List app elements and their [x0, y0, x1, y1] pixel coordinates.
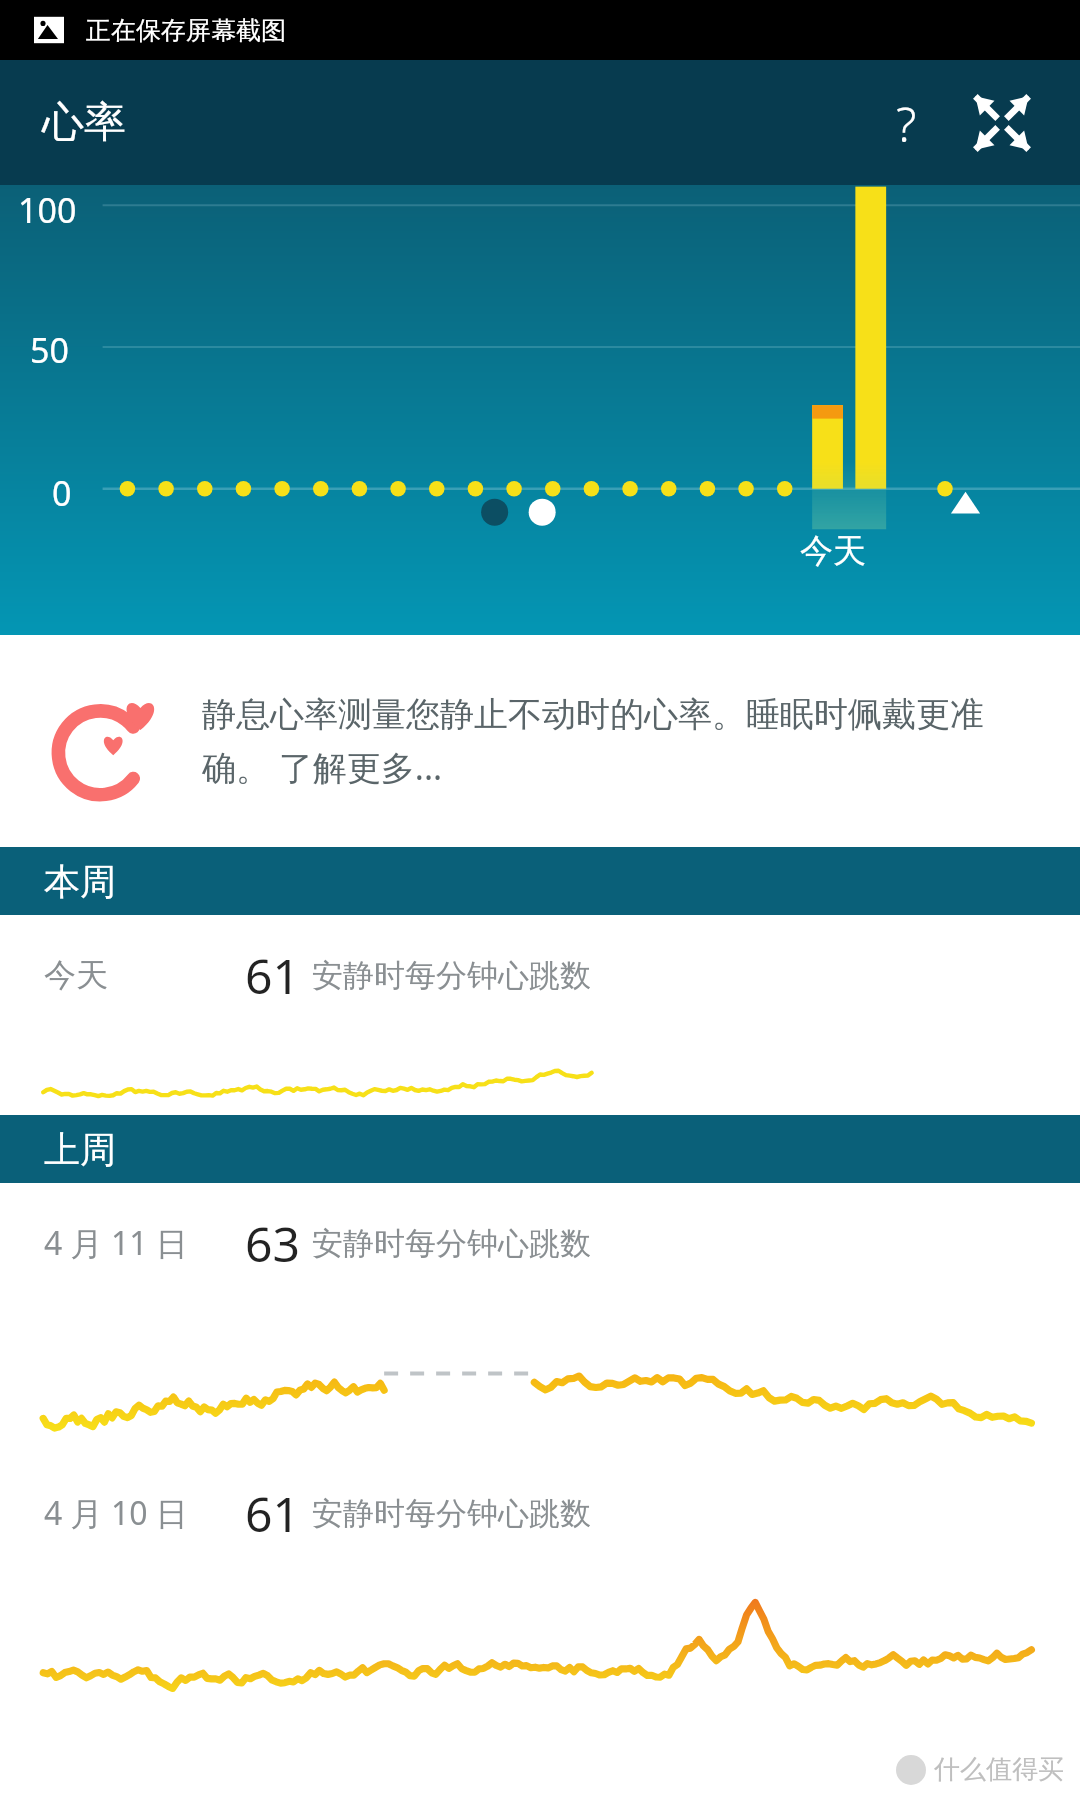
staticText: 4 月 10 日 [44, 1491, 188, 1535]
staticText: 61 [245, 1481, 300, 1546]
button[interactable]: 4 月 11 日 [0, 1183, 1080, 1303]
button[interactable]: 今天 [0, 915, 1080, 1035]
staticText: 安静时每分钟心跳数 [312, 1224, 591, 1263]
staticText: 100 [18, 187, 77, 233]
staticText: 静息心率测量您静止不动时的心率。睡眠时佩戴更准确。 了解更多... [202, 693, 1032, 790]
staticText: 正在保存屏幕截图 [86, 15, 286, 46]
button[interactable]: 静息心率测量您静止不动时的心率。睡眠时佩戴更准确。 了解更多... [0, 635, 1080, 847]
staticText: 0 [52, 470, 72, 516]
button[interactable]: 帮助 [858, 75, 954, 171]
staticText: 4 月 11 日 [44, 1221, 188, 1265]
button[interactable]: 上周 [0, 1115, 1080, 1183]
staticText: 61 [245, 943, 300, 1008]
staticText: 什么值得买 [934, 1753, 1064, 1786]
staticText: 安静时每分钟心跳数 [312, 956, 591, 995]
staticText: 今天 [800, 530, 866, 572]
staticText: 上周 [44, 1127, 116, 1172]
staticText: 63 [245, 1211, 300, 1276]
staticText: ? [896, 91, 917, 156]
staticText: 本周 [44, 859, 116, 904]
staticText: 今天 [44, 955, 108, 995]
staticText: 安静时每分钟心跳数 [312, 1494, 591, 1533]
staticText: 心率 [42, 96, 126, 149]
button[interactable]: 4 月 10 日 [0, 1453, 1080, 1573]
button[interactable]: 全屏 [954, 75, 1050, 171]
button[interactable]: 本周 [0, 847, 1080, 915]
staticText: 50 [30, 327, 69, 373]
